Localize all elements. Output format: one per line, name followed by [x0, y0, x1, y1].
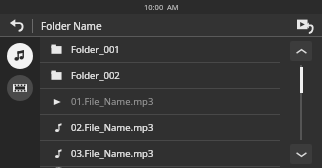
- button[interactable]: 02.File_Name.mp3: [40, 115, 280, 140]
- button[interactable]: Video: [7, 75, 33, 101]
- button[interactable]: Now playing: [288, 14, 322, 37]
- staticText: Folder_001: [71, 43, 120, 56]
- staticText: 03.File_Name.mp3: [71, 147, 154, 160]
- button[interactable]: 03.File_Name.mp3: [40, 141, 280, 166]
- staticText: Folder Name: [41, 19, 102, 33]
- button[interactable]: 01.File_Name.mp3: [40, 89, 280, 114]
- button[interactable]: Music: [7, 43, 33, 69]
- staticText: 01.File_Name.mp3: [71, 95, 154, 108]
- button[interactable]: Scroll up: [290, 41, 312, 61]
- staticText: Folder_002: [71, 69, 120, 82]
- button[interactable]: Folder_001: [40, 37, 280, 62]
- staticText: 10:00 AM: [144, 2, 179, 12]
- button[interactable]: Scroll down: [290, 144, 312, 164]
- button[interactable]: Folder_002: [40, 63, 280, 88]
- button[interactable]: [40, 167, 280, 168]
- staticText: 02.File_Name.mp3: [71, 121, 154, 134]
- button[interactable]: Back: [0, 14, 32, 37]
